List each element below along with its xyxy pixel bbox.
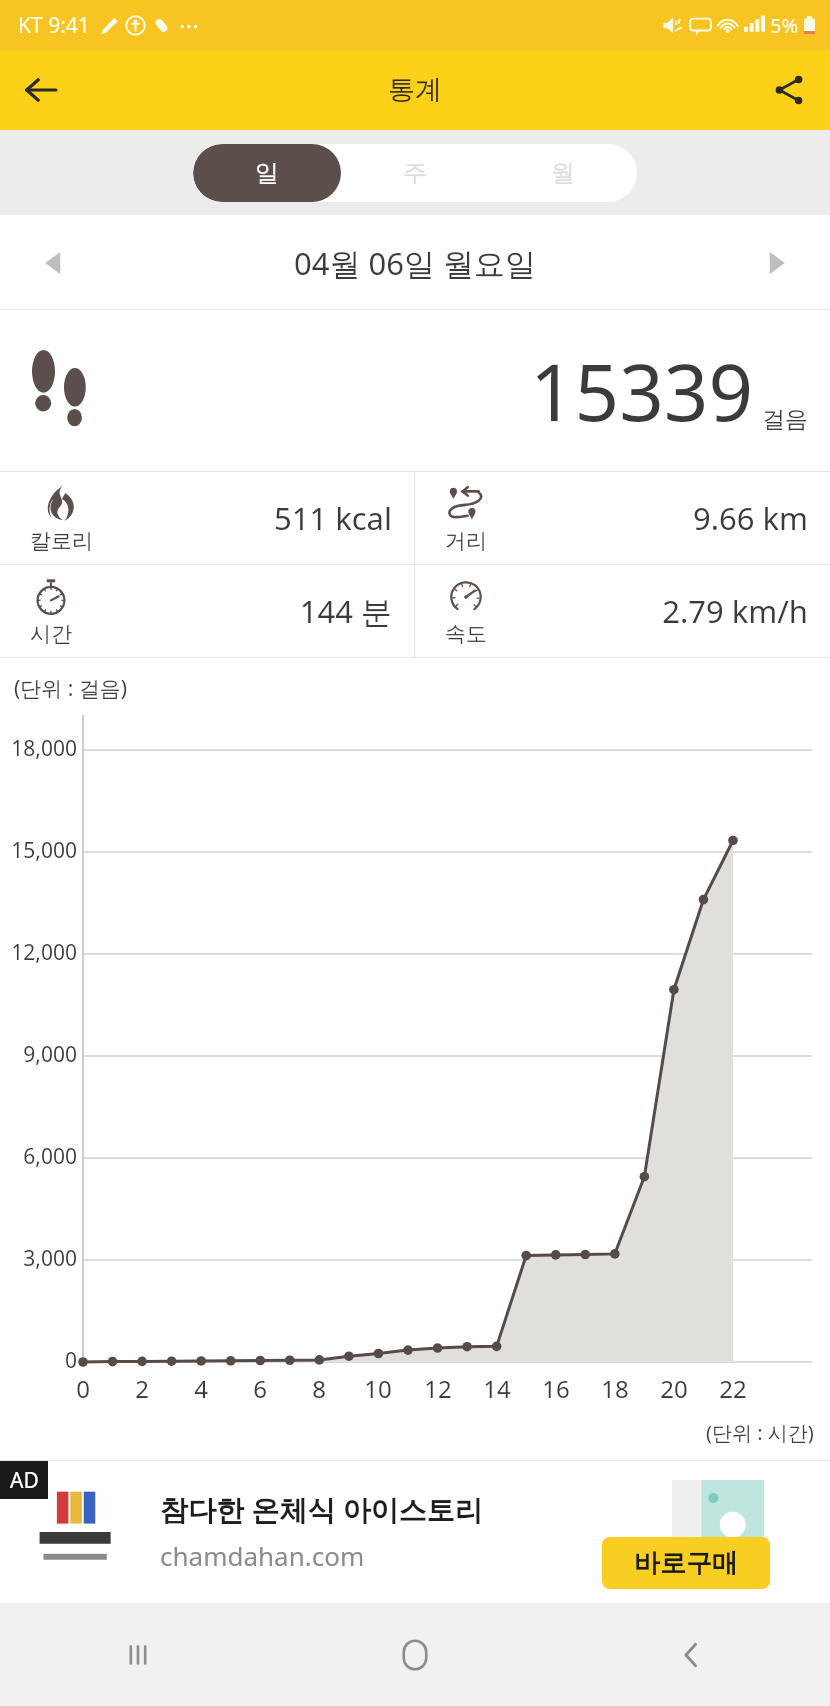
staticText: 20: [654, 1372, 694, 1405]
button[interactable]: 칼로리: [0, 472, 414, 564]
staticText: 2: [122, 1372, 162, 1405]
button[interactable]: 15339: [0, 310, 830, 472]
staticText: 속도: [445, 621, 487, 647]
button[interactable]: Next day: [748, 235, 804, 291]
staticText: 통계: [388, 73, 442, 107]
staticText: 0: [8, 1346, 77, 1375]
staticText: 9,000: [8, 1040, 77, 1069]
staticText: 18: [595, 1372, 635, 1405]
staticText: chamdahan.com: [160, 1538, 365, 1573]
staticText: 3,000: [8, 1244, 77, 1273]
button[interactable]: Share: [760, 61, 818, 119]
staticText: AD: [10, 1466, 39, 1495]
button[interactable]: 거리: [415, 472, 830, 564]
staticText: 15,000: [8, 836, 77, 865]
staticText: 6,000: [8, 1142, 77, 1171]
staticText: 511 kcal: [0, 497, 392, 539]
staticText: 18,000: [8, 734, 77, 763]
staticText: 04월 06일 월요일: [294, 242, 537, 284]
button[interactable]: 월: [489, 144, 637, 202]
staticText: KT 9:41: [18, 11, 90, 40]
staticText: 0: [63, 1372, 103, 1405]
staticText: 12: [418, 1372, 458, 1405]
staticText: 참다한 온체식 아이스토리: [160, 1490, 483, 1528]
button[interactable]: Recent apps: [0, 1603, 276, 1706]
staticText: 월: [551, 158, 575, 188]
staticText: 12,000: [8, 938, 77, 967]
button[interactable]: 속도: [415, 565, 830, 657]
staticText: 바로구매: [634, 1547, 738, 1580]
staticText: 2.79 km/h: [415, 590, 808, 632]
staticText: (단위 : 걸음): [14, 674, 128, 703]
staticText: 일: [255, 158, 279, 188]
staticText: 8: [299, 1372, 339, 1405]
button[interactable]: Home: [276, 1603, 553, 1706]
button[interactable]: Previous day: [26, 235, 82, 291]
staticText: (단위 : 시간): [706, 1419, 814, 1446]
staticText: 4: [181, 1372, 221, 1405]
staticText: 5%: [770, 12, 799, 39]
staticText: 걸음: [762, 405, 808, 434]
staticText: 6: [240, 1372, 280, 1405]
button[interactable]: AD: [0, 1460, 830, 1603]
button[interactable]: Back: [553, 1603, 830, 1706]
staticText: 주: [403, 158, 427, 188]
staticText: 시간: [30, 621, 72, 647]
staticText: 15339: [530, 338, 754, 444]
staticText: 22: [713, 1372, 753, 1405]
staticText: 거리: [445, 528, 487, 554]
button[interactable]: 시간: [0, 565, 414, 657]
staticText: 칼로리: [30, 528, 93, 554]
button[interactable]: 바로구매: [602, 1537, 770, 1589]
button[interactable]: 주: [341, 144, 489, 202]
staticText: 14: [477, 1372, 517, 1405]
staticText: 16: [536, 1372, 576, 1405]
staticText: 9.66 km: [415, 497, 808, 539]
button[interactable]: 일: [193, 144, 341, 202]
staticText: 144 분: [0, 590, 392, 632]
staticText: 10: [358, 1372, 398, 1405]
button[interactable]: Back: [12, 61, 70, 119]
